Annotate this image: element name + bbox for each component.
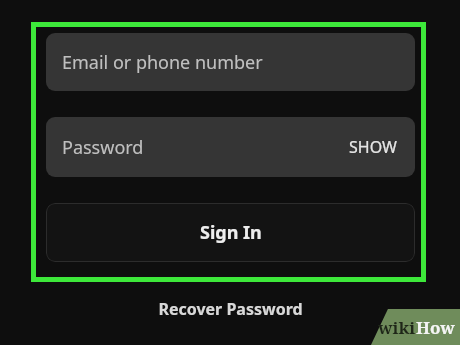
staticText: SHOW <box>349 136 397 158</box>
staticText: Password <box>62 135 144 160</box>
button[interactable]: Recover Password <box>148 294 313 324</box>
staticText: Email or phone number <box>62 50 263 75</box>
button[interactable]: SHOW <box>347 131 399 163</box>
button[interactable]: Email or phone number <box>46 33 415 91</box>
staticText: Sign In <box>200 220 262 245</box>
button[interactable]: Password <box>46 117 415 177</box>
other: Highlight <box>0 0 460 345</box>
staticText: How <box>416 316 455 339</box>
button[interactable]: Sign In <box>46 203 415 262</box>
staticText: Recover Password <box>158 298 303 320</box>
staticText: wiki <box>378 316 416 339</box>
